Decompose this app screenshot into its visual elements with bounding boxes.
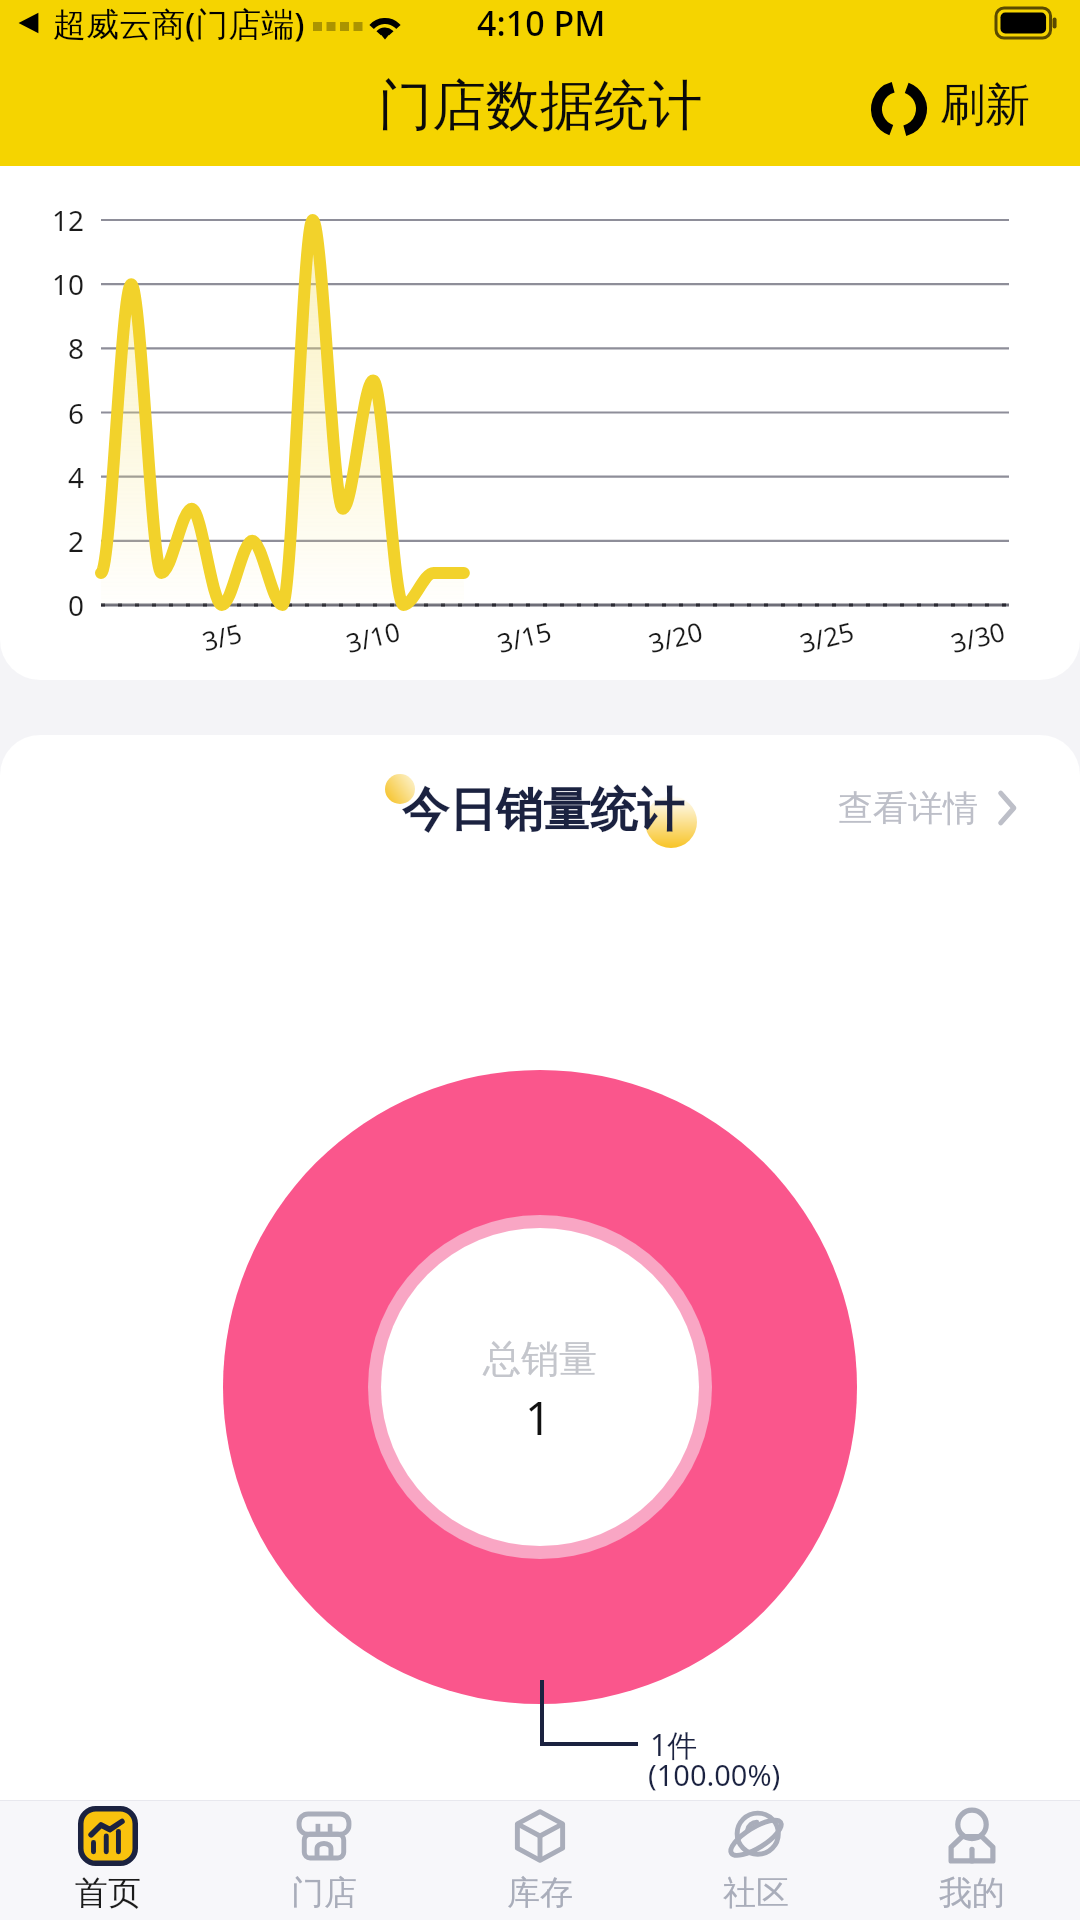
staticText: 1: [525, 1386, 552, 1449]
button[interactable]: 库存: [432, 1801, 648, 1920]
button[interactable]: 查看详情: [838, 786, 1016, 830]
button[interactable]: 我的: [864, 1801, 1080, 1920]
staticText: 刷新: [940, 77, 1030, 134]
staticText: 1件: [650, 1724, 698, 1765]
button[interactable]: 刷新: [859, 75, 1042, 148]
staticText: 超威云商(门店端): [53, 1, 305, 46]
staticText: 社区: [723, 1872, 789, 1914]
staticText: 查看详情: [838, 786, 978, 830]
staticText: 我的: [939, 1872, 1005, 1914]
staticText: 4:10 PM: [477, 0, 606, 46]
staticText: 门店数据统计: [378, 72, 702, 140]
staticText: 今日销量统计: [402, 781, 684, 840]
button[interactable]: 首页: [0, 1801, 216, 1920]
staticText: 总销量: [483, 1335, 597, 1383]
staticText: (100.00%): [648, 1755, 781, 1794]
staticText: 门店: [291, 1872, 357, 1914]
button[interactable]: 门店: [216, 1801, 432, 1920]
button[interactable]: 社区: [648, 1801, 864, 1920]
other: 刷新: [871, 81, 927, 137]
staticText: 库存: [507, 1872, 573, 1914]
staticText: 首页: [75, 1872, 141, 1914]
